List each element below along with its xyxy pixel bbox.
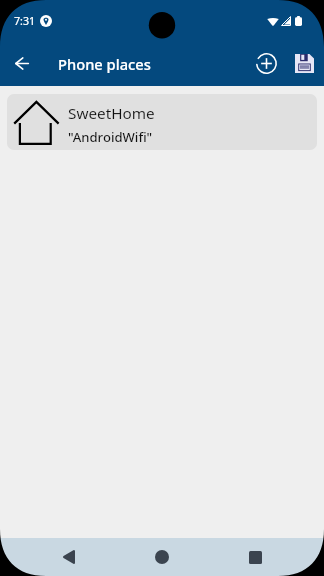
staticText: Phone places: [58, 54, 151, 74]
staticText: "AndroidWifi": [68, 128, 153, 146]
staticText: 7:31: [14, 14, 36, 29]
button[interactable]: Back: [52, 540, 86, 574]
staticText: SweetHome: [68, 103, 155, 124]
button[interactable]: Recent apps: [238, 540, 272, 574]
button[interactable]: Back: [6, 47, 38, 79]
button[interactable]: SweetHome: [7, 94, 317, 150]
button[interactable]: Add place: [247, 44, 285, 82]
button[interactable]: Save: [285, 44, 323, 82]
button[interactable]: Home: [145, 540, 179, 574]
